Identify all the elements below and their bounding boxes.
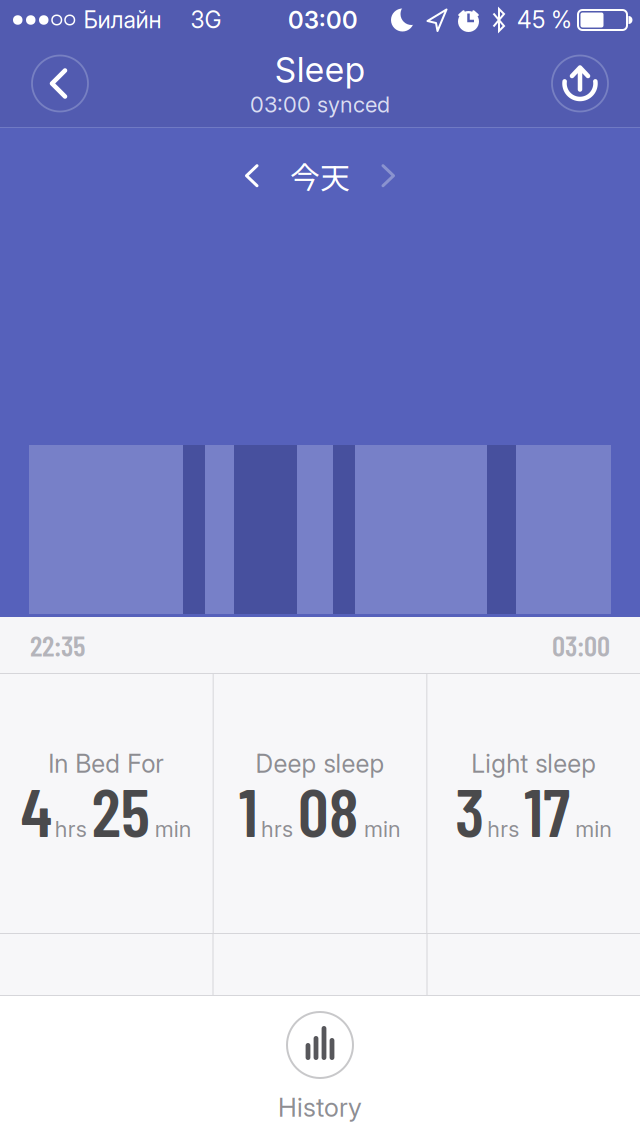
staticText: min [364, 816, 401, 842]
staticText: min [155, 816, 192, 842]
staticText: 22:35 [30, 628, 85, 662]
staticText: In Bed For [48, 749, 164, 778]
button[interactable]: Share [552, 55, 608, 111]
staticText: 03:00 [288, 6, 358, 34]
staticText: 1 [239, 769, 258, 851]
staticText: 今天 [290, 154, 350, 197]
staticText: 45 % [517, 6, 572, 33]
staticText: 08 [298, 769, 359, 851]
staticText: hrs [55, 816, 87, 842]
staticText: 3G [190, 6, 221, 33]
staticText: Light sleep [471, 749, 596, 778]
staticText: Sleep [274, 49, 365, 90]
button[interactable]: Next day [381, 164, 395, 188]
staticText: Deep sleep [255, 749, 384, 778]
staticText: hrs [261, 816, 293, 842]
staticText: 03:00 [552, 628, 610, 662]
button[interactable]: History [278, 1012, 362, 1123]
button[interactable]: Back [32, 55, 88, 111]
button[interactable]: Previous day [244, 164, 258, 188]
staticText: 03:00 synced [250, 92, 390, 118]
staticText: min [575, 816, 612, 842]
staticText: 25 [92, 769, 150, 851]
staticText: Билайн [83, 6, 161, 33]
staticText: History [278, 1092, 362, 1123]
staticText: 17 [524, 769, 570, 851]
staticText: hrs [487, 816, 519, 842]
staticText: 4 [21, 769, 52, 851]
staticText: 3 [455, 769, 484, 851]
